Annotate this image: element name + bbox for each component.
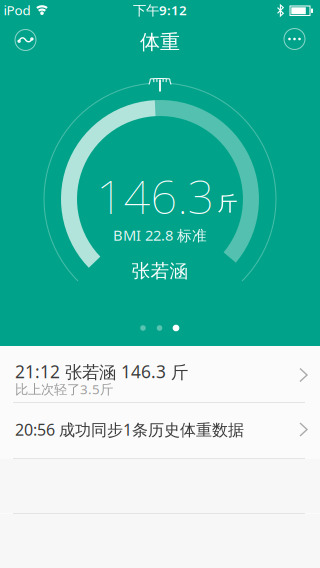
staticText: 斤 xyxy=(217,191,237,216)
staticText: 张若涵 xyxy=(131,259,188,282)
staticText: 下午9:12 xyxy=(133,1,187,19)
staticText: iPod xyxy=(3,1,30,19)
staticText: 20:56 成功同步1条历史体重数据 xyxy=(15,419,244,440)
button[interactable]: 20:56 成功同步1条历史体重数据 xyxy=(0,403,320,459)
staticText: 146.3 xyxy=(96,165,214,227)
button[interactable]: 体重趋势 xyxy=(7,22,43,58)
button[interactable]: 21:12 张若涵 146.3 斤 xyxy=(0,346,320,403)
staticText: 21:12 张若涵 146.3 斤 xyxy=(15,360,188,383)
staticText: BMI 22.8 标准 xyxy=(113,225,207,245)
staticText: 体重 xyxy=(140,30,180,54)
staticText: 比上次轻了3.5斤 xyxy=(15,380,113,398)
button[interactable]: 更多 xyxy=(276,21,312,57)
